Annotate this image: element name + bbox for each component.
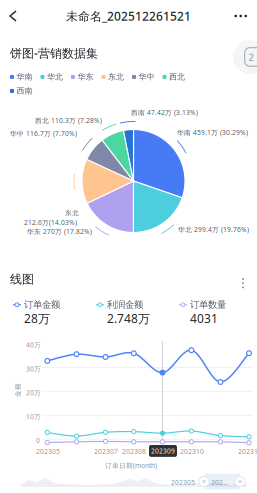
staticText: 202307 [94,447,118,456]
staticText: 20万 [26,388,41,397]
staticText: 0 [36,436,40,445]
staticText: 10万 [26,412,41,421]
button[interactable]: Chart type [233,40,257,74]
staticText: 202… [211,478,228,487]
staticText: 华南 [16,72,32,82]
staticText: 华东 [77,72,93,82]
staticText: 40万 [26,340,41,349]
staticText: 线图 [10,272,34,287]
staticText: 华北 299.4万 (19.76%) [178,225,249,234]
button[interactable]: More [224,3,257,29]
staticText: 华中 [138,72,154,82]
staticText: 202305 [36,447,60,456]
button[interactable]: Range end [235,476,245,486]
staticText: 金额 [11,386,25,394]
staticText: 东北 [108,72,124,82]
staticText: 饼图-营销数据集 [10,45,98,61]
staticText: 4031 [190,310,218,326]
staticText: 华中 116.7万 (7.70%) [10,129,77,138]
staticText: 202312 [238,447,257,456]
staticText: 华北 [47,72,63,82]
button[interactable]: Range start [199,476,209,486]
button[interactable]: Back [0,2,26,30]
staticText: 28万 [24,310,50,326]
staticText: 212.6万(14.03%) [24,218,77,227]
staticText: 西南 [16,86,32,96]
staticText: 订单金额 [24,299,60,310]
staticText: 东北 [65,209,79,217]
staticText: 西北 110.3万 (7.28%) [35,116,102,125]
staticText: 30万 [26,364,41,373]
staticText: 利润金额 [107,299,143,310]
staticText: 202310 [180,447,204,456]
staticText: 202308 [122,447,146,456]
staticText: 未命名_202512261521 [66,8,191,24]
staticText: 西南 47.42万 (3.13%) [131,108,198,117]
staticText: 西北 [169,72,185,82]
staticText: 2.748万 [107,310,150,326]
staticText: 202305 [171,478,195,487]
staticText: 2 [248,51,253,63]
staticText: 订单日期(month) [105,461,157,470]
staticText: 订单数量 [190,299,226,310]
button[interactable]: Chart menu [234,270,252,296]
staticText: 华南 459.1万 (30.29%) [177,128,248,137]
staticText: 华东 270万 (17.82%) [27,227,92,236]
staticText: 202309 [151,446,175,455]
